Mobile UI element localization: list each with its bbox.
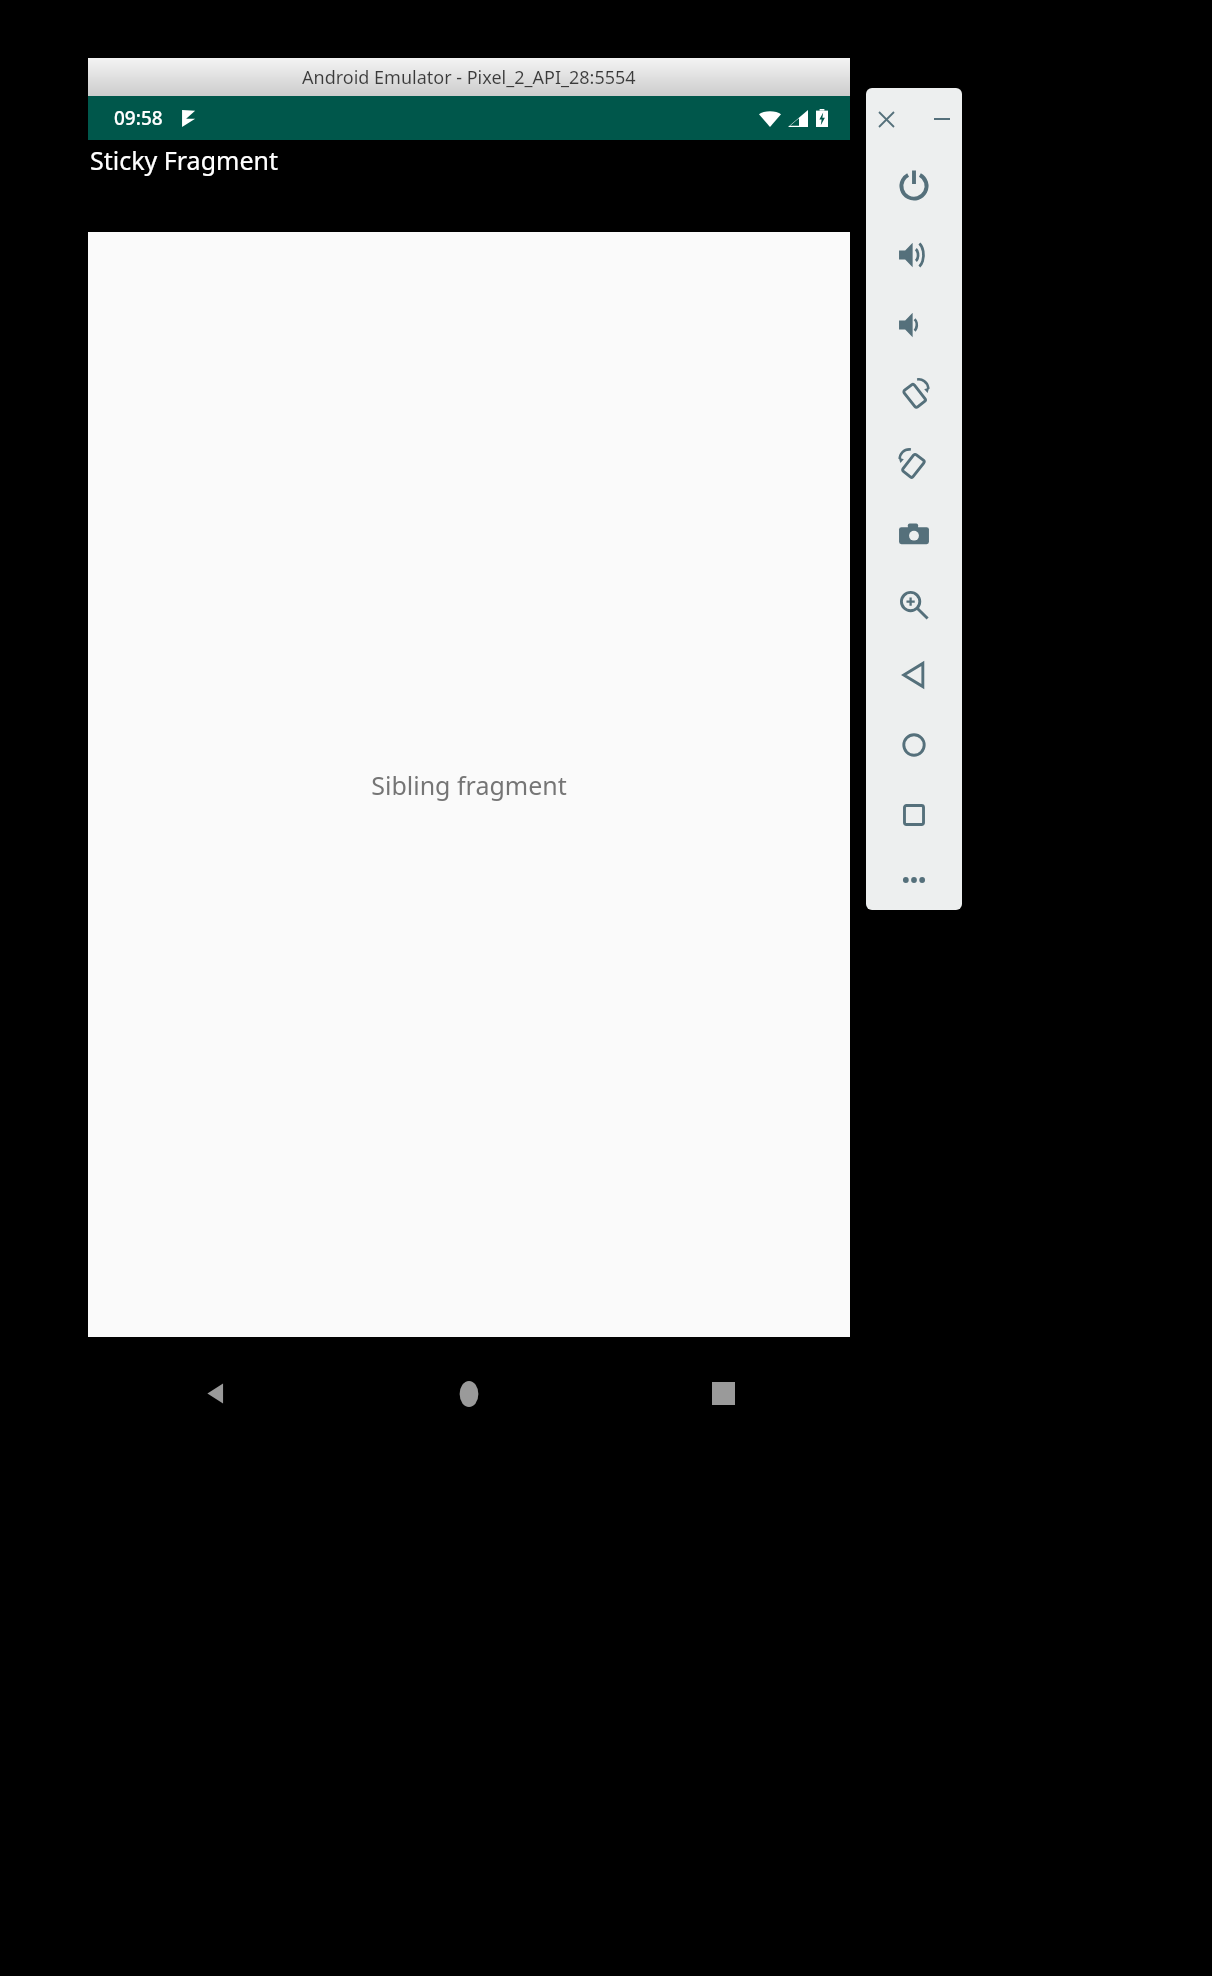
staticText: Android Emulator - Pixel_2_API_28:5554	[302, 65, 636, 90]
button[interactable]: Recent apps	[596, 1337, 850, 1450]
button[interactable]: Volume down	[866, 290, 962, 360]
staticText: Sibling fragment	[371, 768, 567, 802]
button[interactable]: Minimize	[925, 102, 959, 136]
button[interactable]: Rotate left	[866, 360, 962, 430]
button[interactable]: Volume up	[866, 220, 962, 290]
button[interactable]: Close	[869, 102, 903, 136]
button[interactable]: Take screenshot	[866, 500, 962, 570]
button[interactable]: Overview	[866, 780, 962, 850]
button[interactable]: Rotate right	[866, 430, 962, 500]
button[interactable]: Power	[866, 150, 962, 220]
button[interactable]: Home	[866, 710, 962, 780]
staticText: Sticky Fragment	[90, 143, 278, 177]
staticText: 09:58	[114, 105, 163, 131]
button[interactable]: Home	[342, 1337, 596, 1450]
button[interactable]: Back	[866, 640, 962, 710]
button[interactable]: Zoom	[866, 570, 962, 640]
button[interactable]: Back	[88, 1337, 342, 1450]
button[interactable]: More options	[866, 850, 962, 910]
